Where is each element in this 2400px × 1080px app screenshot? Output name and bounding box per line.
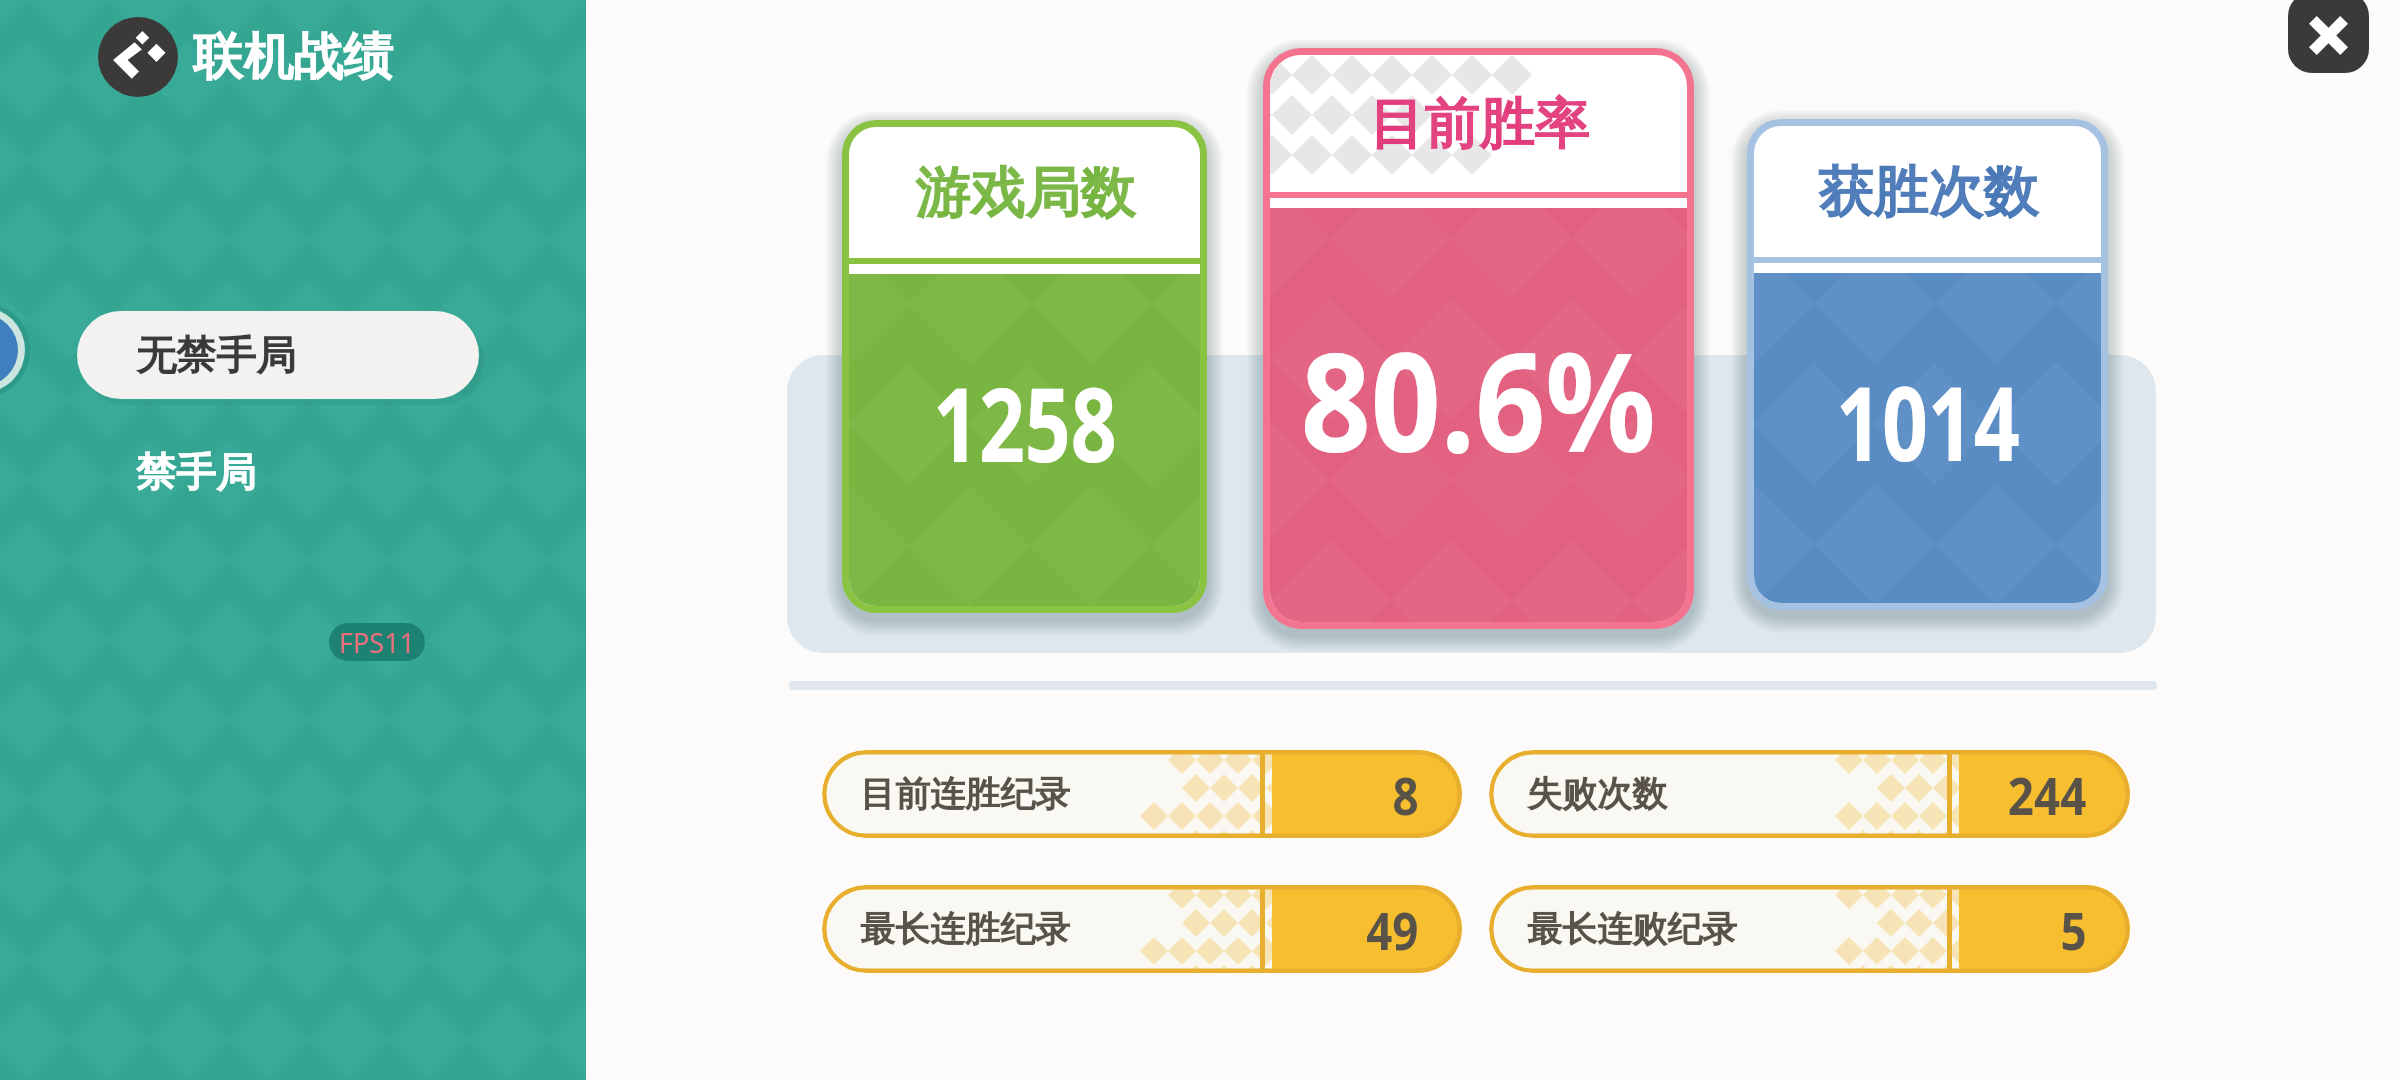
button[interactable]: 目前连胜纪录 — [822, 750, 1462, 838]
staticText: 无禁手局 — [136, 330, 296, 380]
staticText: 244 — [2008, 759, 2087, 830]
staticText: 目前连胜纪录 — [860, 772, 1070, 816]
button[interactable]: 最长连败纪录 — [1489, 885, 2130, 973]
staticText: 游戏局数 — [915, 159, 1135, 228]
staticText: 最长连胜纪录 — [860, 907, 1070, 951]
staticText: 禁手局 — [136, 447, 256, 497]
button[interactable]: Back — [98, 17, 393, 97]
button[interactable]: 失败次数 — [1489, 750, 2130, 838]
button[interactable]: 目前胜率 — [1263, 48, 1694, 629]
staticText: 80.6% — [1301, 307, 1656, 492]
staticText: 联机战绩 — [193, 26, 393, 89]
button[interactable]: 获胜次数 — [1747, 119, 2108, 610]
button[interactable]: 最长连胜纪录 — [822, 885, 1462, 973]
staticText: 1258 — [933, 352, 1117, 492]
staticText: 49 — [1366, 894, 1419, 965]
button[interactable]: 禁手局 — [77, 428, 479, 516]
staticText: 1014 — [1836, 351, 2020, 491]
staticText: 失败次数 — [1527, 772, 1667, 816]
button[interactable]: 游戏局数 — [842, 120, 1207, 613]
staticText: 目前胜率 — [1369, 90, 1589, 159]
staticText: 最长连败纪录 — [1527, 907, 1737, 951]
button[interactable]: 无禁手局 — [77, 311, 479, 399]
button[interactable]: Close — [2288, 0, 2369, 73]
staticText: 获胜次数 — [1818, 158, 2038, 227]
staticText: 5 — [2061, 894, 2087, 965]
staticText: FPS11 — [339, 624, 416, 661]
staticText: 8 — [1393, 759, 1419, 830]
